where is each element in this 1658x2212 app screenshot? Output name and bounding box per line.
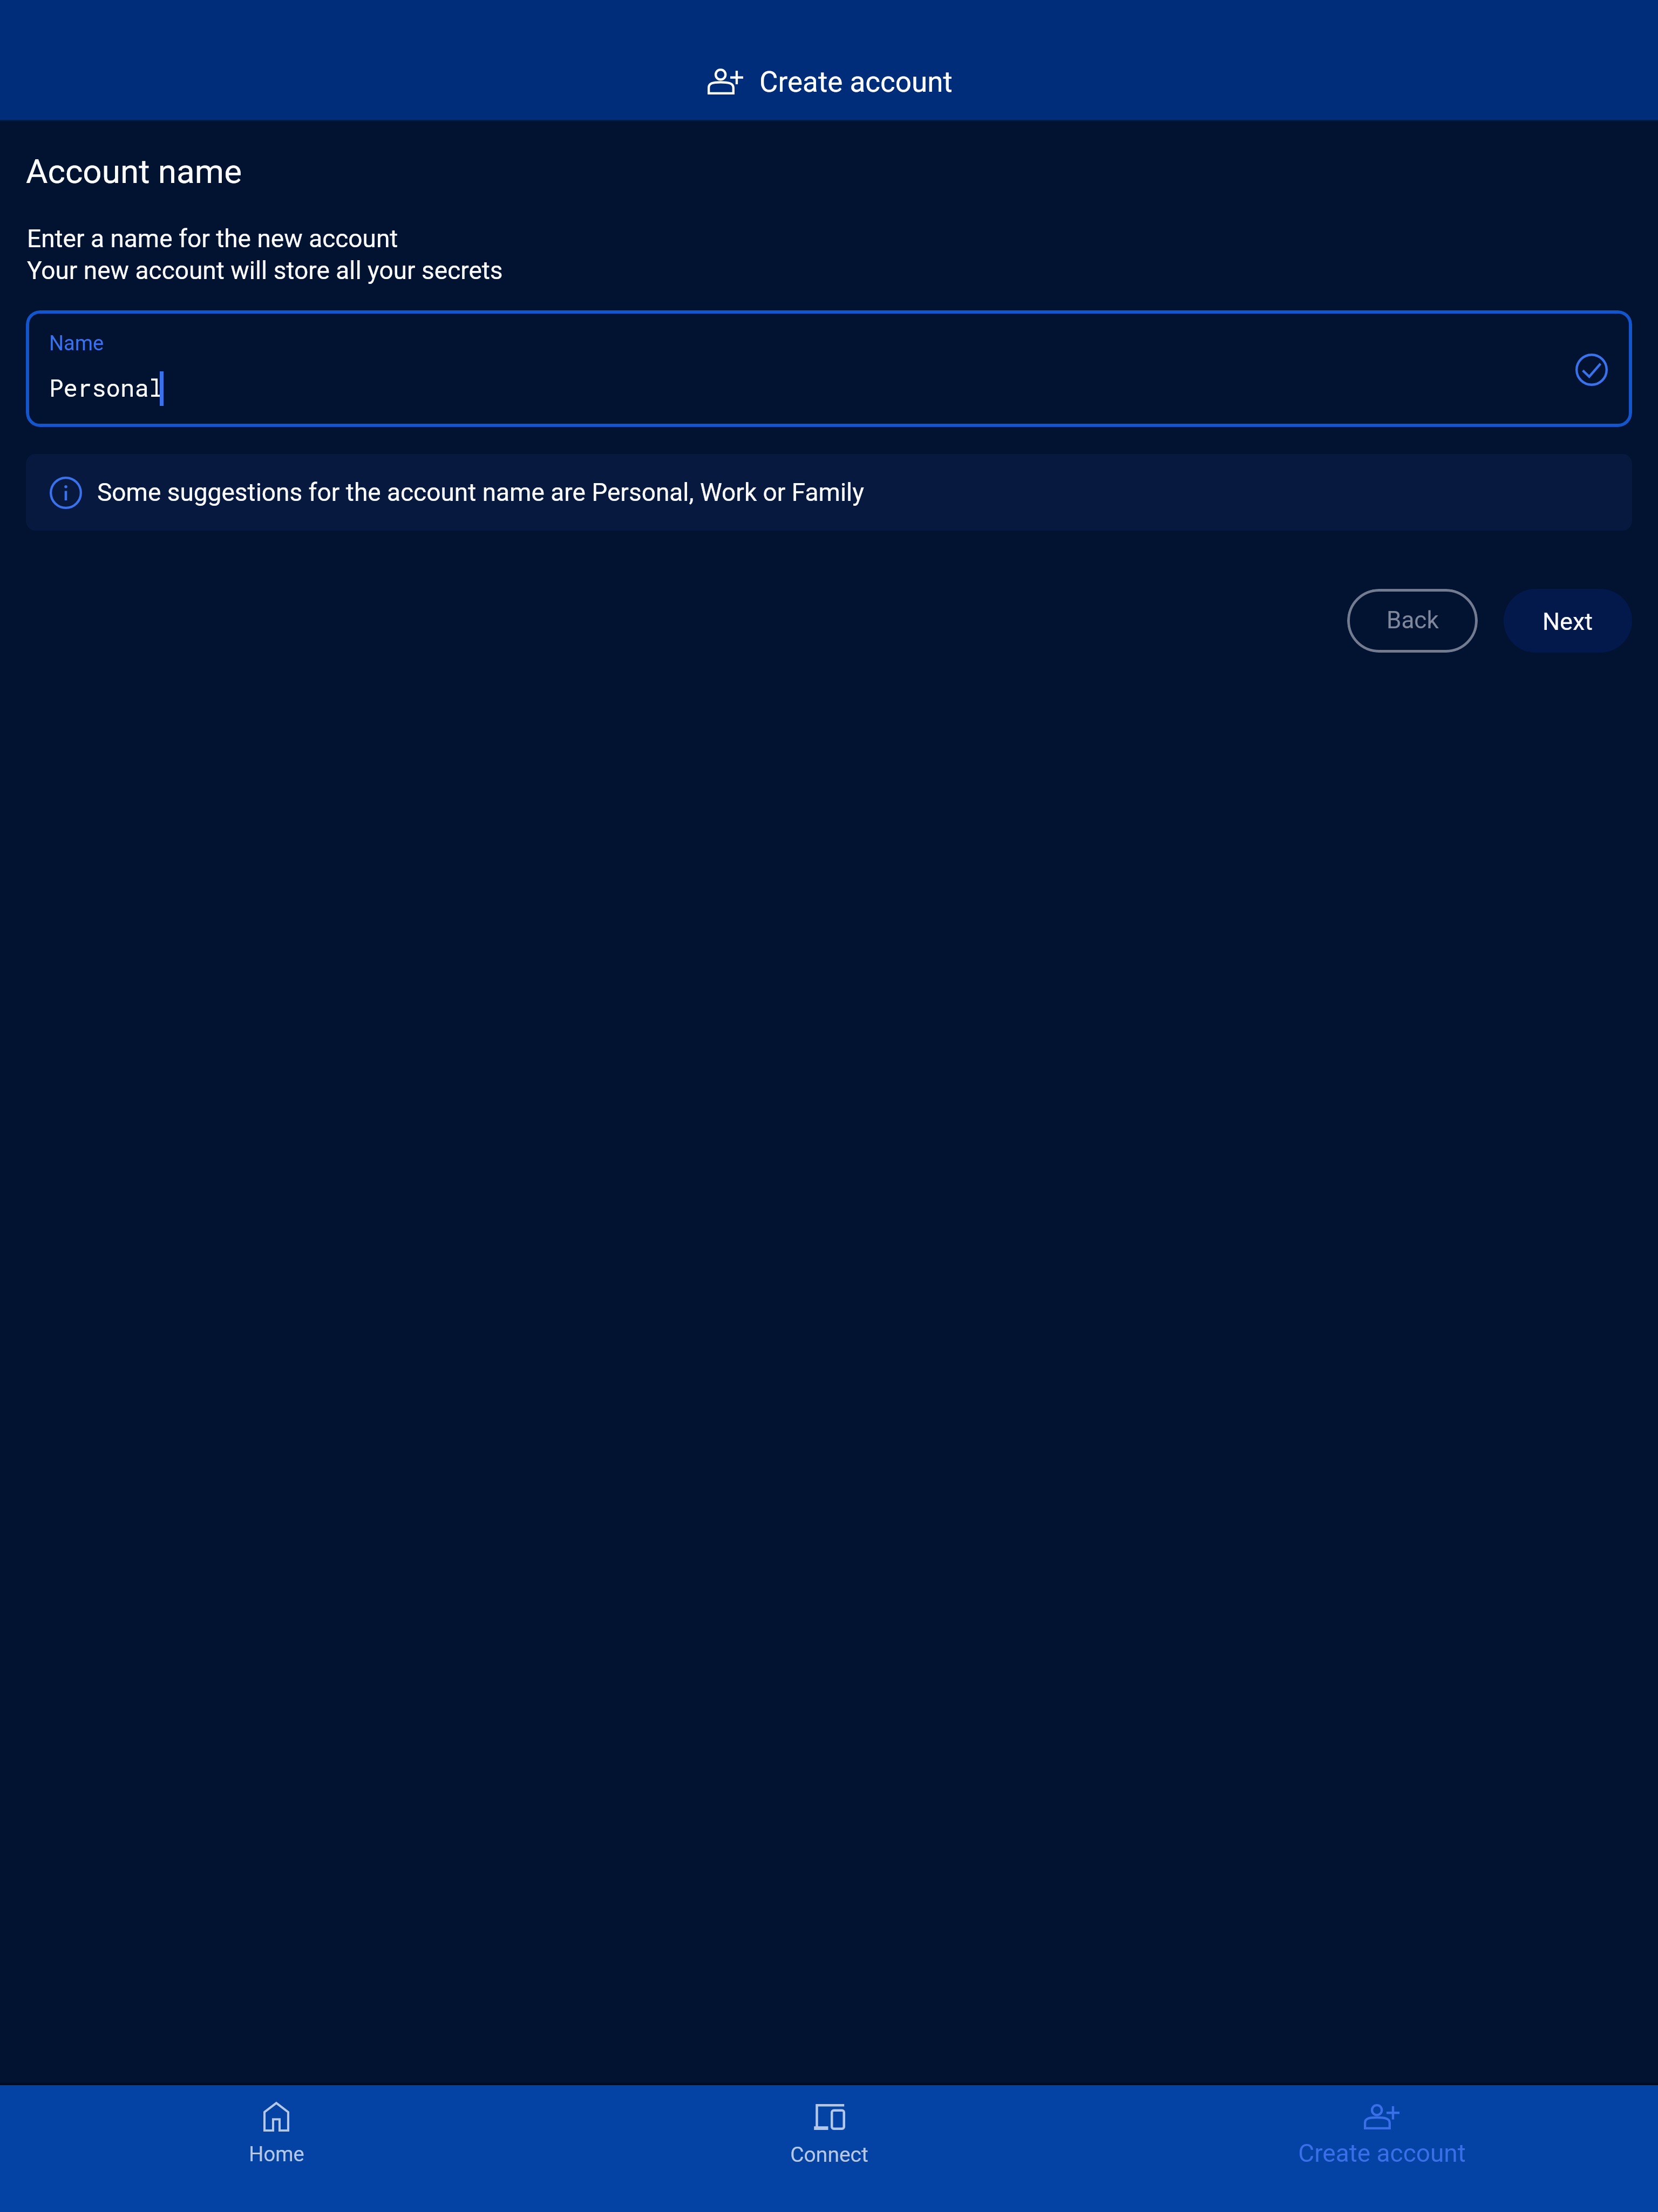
other: Connect <box>813 2104 845 2130</box>
staticText: Enter a name for the new account Your ne… <box>27 224 503 285</box>
staticText: Create account <box>759 65 953 99</box>
button[interactable]: Create account <box>1105 2085 1658 2212</box>
other: Home <box>263 2102 289 2132</box>
staticText: Name <box>49 331 104 356</box>
other: Name is valid <box>1575 354 1608 386</box>
button[interactable]: Back <box>1347 589 1478 653</box>
button[interactable]: Name <box>26 310 1632 427</box>
staticText: Connect <box>790 2142 868 2167</box>
staticText: Back <box>1387 606 1439 634</box>
button[interactable]: Next <box>1504 589 1632 653</box>
staticText: Personal <box>49 372 164 403</box>
staticText: Account name <box>26 152 242 191</box>
button[interactable]: Home <box>0 2085 553 2212</box>
other: Create account <box>708 69 743 94</box>
other: Create account <box>1364 2104 1399 2129</box>
other: Information <box>50 477 82 509</box>
staticText: Some suggestions for the account name ar… <box>97 478 865 507</box>
button[interactable]: Connect <box>553 2085 1105 2212</box>
staticText: Create account <box>1298 2139 1466 2168</box>
staticText: Home <box>249 2142 304 2167</box>
staticText: Next <box>1543 607 1593 636</box>
